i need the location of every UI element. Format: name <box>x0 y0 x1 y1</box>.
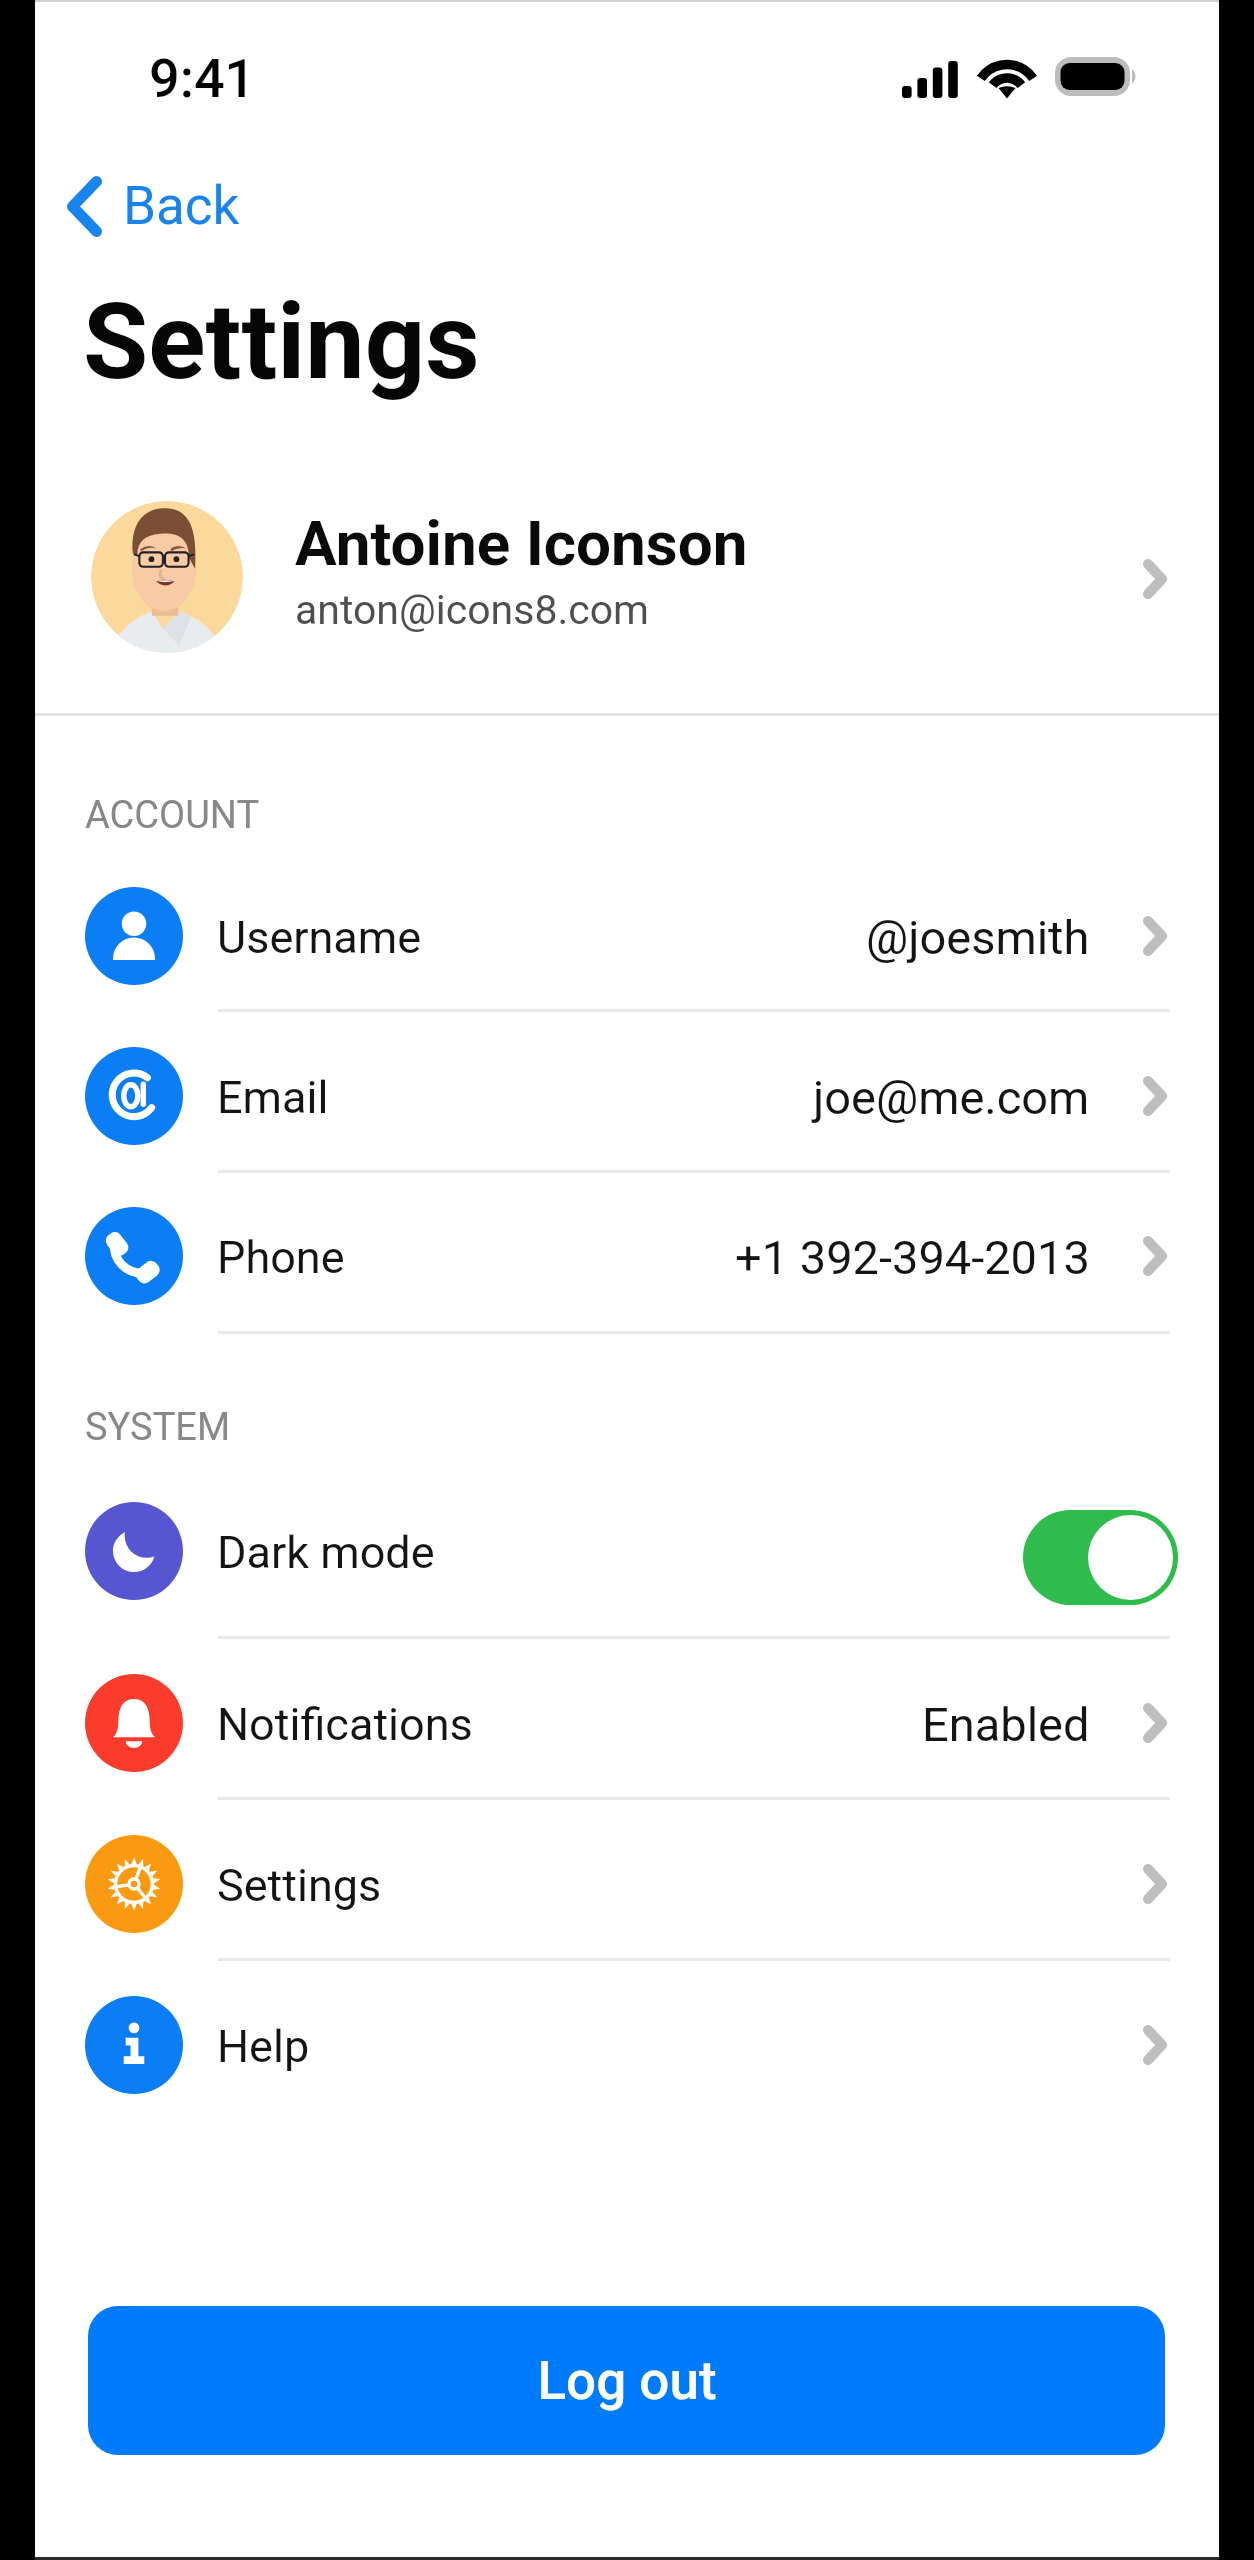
staticText: Log out <box>537 2350 717 2412</box>
button[interactable]: Notifications <box>35 1648 1219 1798</box>
staticText: Help <box>217 2020 310 2073</box>
staticText: Username <box>217 911 422 964</box>
button[interactable]: Phone <box>35 1181 1219 1331</box>
staticText: SYSTEM <box>85 1405 231 1450</box>
staticText: @joesmith <box>866 910 1090 965</box>
staticText: Settings <box>217 1859 382 1912</box>
staticText: Notifications <box>217 1698 473 1751</box>
button[interactable]: Antoine Iconson <box>35 465 1219 689</box>
button[interactable]: Toggle dark mode <box>1023 1510 1178 1605</box>
staticText: Antoine Iconson <box>295 507 748 580</box>
staticText: +1 392-394-2013 <box>735 1230 1090 1285</box>
button[interactable]: Back <box>47 155 264 257</box>
staticText: 9:41 <box>149 47 256 110</box>
staticText: joe@me.com <box>813 1070 1090 1125</box>
button[interactable]: Dark mode <box>35 1476 1219 1626</box>
button[interactable]: Log out <box>88 2306 1165 2455</box>
staticText: anton@icons8.com <box>295 586 650 634</box>
staticText: Phone <box>217 1231 345 1284</box>
staticText: Dark mode <box>217 1526 435 1579</box>
staticText: Back <box>123 175 240 237</box>
staticText: Email <box>217 1071 329 1124</box>
staticText: ACCOUNT <box>85 793 260 838</box>
staticText: Enabled <box>922 1697 1090 1752</box>
button[interactable]: Username <box>35 861 1219 1011</box>
staticText: Settings <box>83 280 480 404</box>
button[interactable]: Help <box>35 1970 1219 2120</box>
button[interactable]: Settings <box>35 1809 1219 1959</box>
button[interactable]: Email <box>35 1021 1219 1171</box>
